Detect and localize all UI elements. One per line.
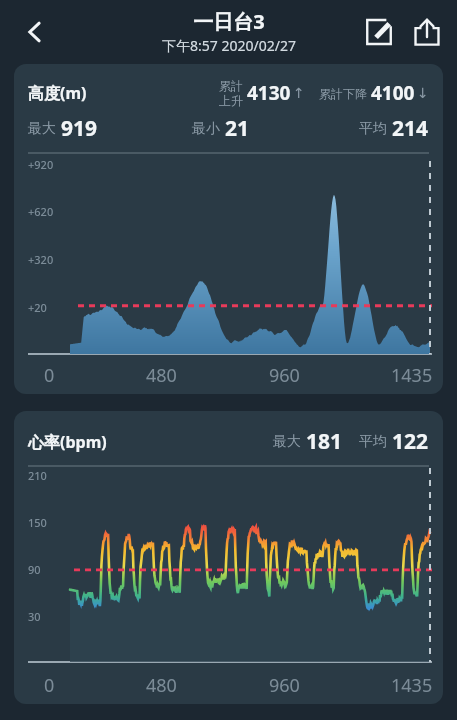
staticText: 高度(m): [28, 82, 87, 104]
staticText: 上升: [219, 93, 243, 108]
staticText: 4130: [247, 80, 291, 106]
staticText: 122: [392, 427, 429, 456]
staticText: 最大: [273, 433, 301, 451]
staticText: 960: [269, 673, 300, 698]
staticText: 0: [44, 673, 55, 698]
button[interactable]: Back: [8, 5, 62, 59]
staticText: 30: [28, 609, 41, 624]
staticText: ↓: [417, 85, 429, 101]
staticText: 1435: [391, 673, 433, 698]
staticText: 150: [28, 515, 47, 530]
staticText: +320: [28, 252, 54, 267]
staticText: 181: [306, 427, 343, 456]
staticText: 21: [225, 114, 250, 143]
staticText: 一日台3: [193, 8, 265, 35]
staticText: 累計下降: [319, 86, 367, 101]
button[interactable]: 高度(m): [14, 64, 443, 394]
staticText: 最大: [28, 120, 56, 138]
staticText: 90: [28, 562, 41, 577]
staticText: +620: [28, 204, 54, 219]
staticText: 平均: [359, 120, 387, 138]
staticText: 心率(bpm): [28, 431, 107, 453]
button[interactable]: Share: [403, 8, 451, 56]
staticText: +920: [28, 157, 54, 172]
staticText: 960: [269, 363, 300, 388]
button[interactable]: 心率(bpm): [14, 411, 443, 704]
staticText: ↑: [293, 85, 305, 101]
staticText: 累計: [219, 78, 243, 93]
staticText: 919: [61, 114, 98, 143]
staticText: 4100: [371, 80, 415, 106]
staticText: 480: [146, 673, 177, 698]
staticText: 0: [44, 363, 55, 388]
staticText: 480: [146, 363, 177, 388]
staticText: 210: [28, 468, 47, 483]
staticText: 下午8:57 2020/02/27: [162, 36, 296, 55]
button[interactable]: Edit: [355, 8, 403, 56]
staticText: 平均: [359, 433, 387, 451]
staticText: +20: [28, 300, 47, 315]
staticText: 最小: [192, 120, 220, 138]
staticText: 214: [392, 114, 429, 143]
staticText: 1435: [391, 363, 433, 388]
